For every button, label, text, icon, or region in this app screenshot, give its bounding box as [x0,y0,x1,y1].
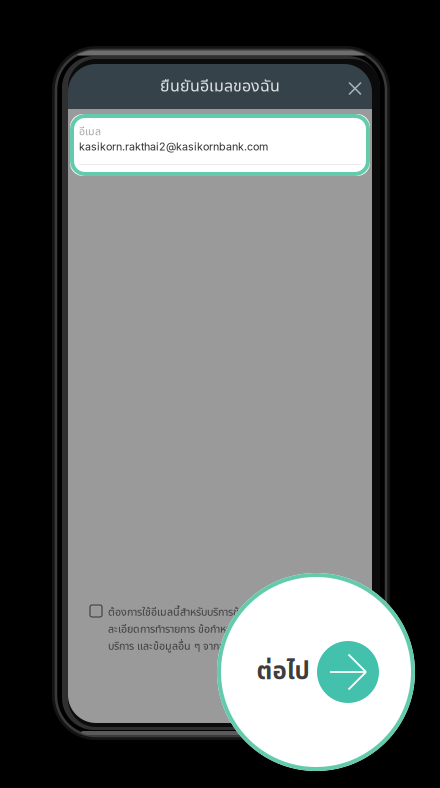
staticText: ต่อไป [256,654,309,690]
staticText: อีเมล [79,124,101,140]
staticText: ยืนยันอีเมลของฉัน [160,74,280,99]
staticText: บริการ และข้อมูลอื่น ๆ จากธนาคาร [108,638,252,654]
staticText: ละเอียดการทำรายการ ข้อกำหนดการใช้ [108,621,264,637]
button[interactable]: ต่อไป [217,573,415,771]
button[interactable]: Close [341,64,372,109]
button[interactable]: ต้องการใช้อีเมลนี้สำหรับบริการข้อมูลราย [68,604,372,655]
staticText: kasikorn.rakthai2@kasikornbank.com [79,140,268,153]
staticText: ต้องการใช้อีเมลนี้สำหรับบริการข้อมูลราย [108,604,273,620]
